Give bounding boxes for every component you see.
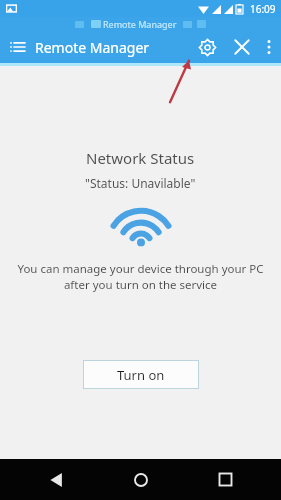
staticText: "Status: Unavilable" (85, 175, 196, 191)
staticText: Remote Manager (103, 18, 177, 30)
button[interactable]: More options (259, 34, 281, 60)
button[interactable]: Close (225, 34, 259, 60)
button[interactable]: Back (27, 463, 85, 497)
staticText: Network Status (86, 148, 195, 168)
staticText: Remote Manager (35, 38, 190, 57)
button[interactable]: Home (112, 463, 170, 497)
button[interactable]: Settings (190, 34, 225, 61)
button[interactable]: Recents (197, 463, 254, 496)
staticText: Turn on (117, 366, 165, 384)
button[interactable]: Turn on (83, 360, 199, 389)
staticText: 16:09 (250, 2, 276, 16)
button[interactable]: Menu (0, 35, 35, 59)
staticText: You can manage your device through your … (14, 261, 267, 292)
